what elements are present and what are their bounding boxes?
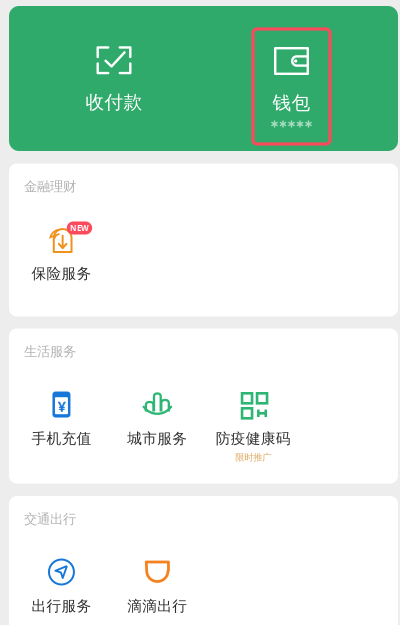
staticText: 生活服务 (24, 343, 76, 360)
button[interactable]: NEW (13, 225, 109, 296)
staticText: 收付款 (85, 91, 142, 114)
button[interactable]: ¥ (13, 390, 109, 461)
staticText: 保险服务 (31, 264, 91, 282)
staticText: 限时推广 (235, 452, 271, 463)
button[interactable]: 滴滴出行 (109, 558, 205, 625)
staticText: 交通出行 (24, 511, 76, 527)
staticText: 钱包 (272, 91, 310, 114)
button[interactable]: 钱包 (253, 29, 330, 144)
staticText: 防疫健康码 (216, 429, 291, 447)
staticText: 出行服务 (31, 597, 91, 615)
button[interactable]: 收付款 (49, 6, 179, 151)
button[interactable]: 出行服务 (13, 558, 109, 625)
staticText: 城市服务 (127, 429, 187, 447)
staticText: 手机充值 (31, 429, 91, 447)
staticText: 金融理财 (24, 178, 76, 195)
staticText: ¥ (57, 396, 65, 416)
button[interactable]: 城市服务 (109, 390, 205, 461)
button[interactable]: 防疫健康码 (205, 390, 301, 461)
staticText: 滴滴出行 (127, 597, 187, 615)
staticText: NEW (70, 223, 89, 233)
